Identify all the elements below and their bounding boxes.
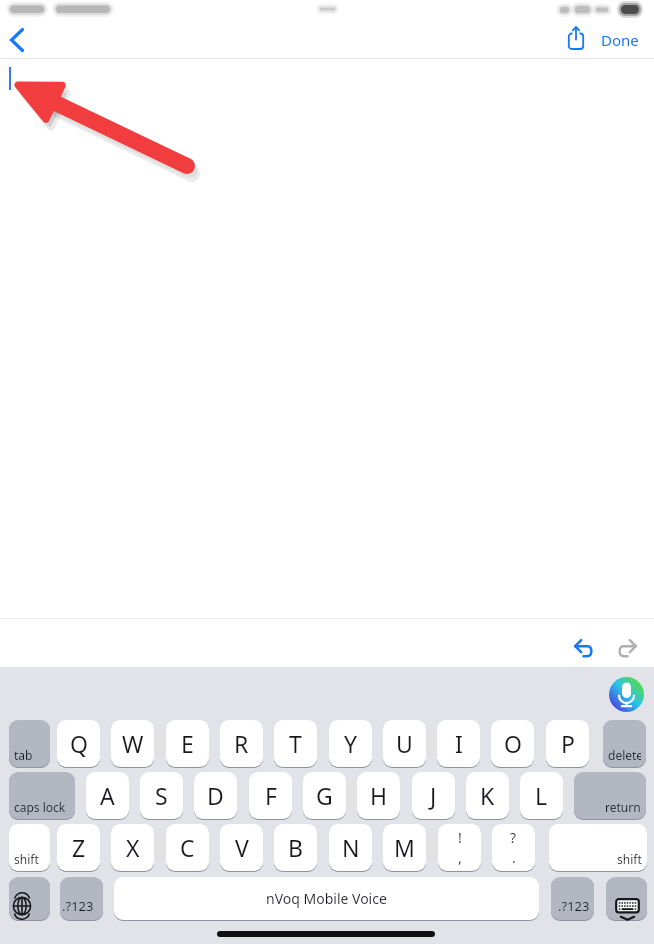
button[interactable] xyxy=(566,26,586,52)
button[interactable]: R xyxy=(220,720,263,767)
staticText: caps lock xyxy=(14,799,66,815)
button[interactable]: F xyxy=(249,772,292,819)
staticText: R xyxy=(234,728,249,759)
button[interactable]: shift xyxy=(9,824,50,871)
button[interactable]: A xyxy=(86,772,129,819)
staticText: N xyxy=(342,832,360,863)
button[interactable]: K xyxy=(466,772,509,819)
button[interactable]: ! xyxy=(438,824,481,871)
button[interactable]: J xyxy=(412,772,455,819)
staticText: I xyxy=(455,728,463,759)
button[interactable] xyxy=(606,877,647,920)
staticText: nVoq Mobile Voice xyxy=(266,889,387,908)
button[interactable]: .?123 xyxy=(60,877,103,920)
button[interactable]: M xyxy=(383,824,426,871)
staticText: T xyxy=(289,728,302,759)
staticText: .?123 xyxy=(558,897,590,915)
staticText: ! xyxy=(458,828,462,847)
button[interactable]: Q xyxy=(57,720,100,767)
staticText: X xyxy=(126,832,140,863)
staticText: D xyxy=(207,780,224,811)
button[interactable]: H xyxy=(357,772,400,819)
staticText: B xyxy=(288,832,303,863)
staticText: U xyxy=(396,728,413,759)
button[interactable]: ? xyxy=(492,824,535,871)
staticText: C xyxy=(180,832,195,863)
staticText: L xyxy=(535,780,548,811)
button[interactable]: E xyxy=(166,720,209,767)
button[interactable]: shift xyxy=(549,824,647,871)
staticText: E xyxy=(181,728,194,759)
button[interactable]: tab xyxy=(9,720,50,767)
staticText: F xyxy=(265,780,277,811)
button[interactable]: T xyxy=(274,720,317,767)
staticText: G xyxy=(316,780,333,811)
staticText: delete xyxy=(608,747,641,763)
staticText: Done xyxy=(601,30,639,50)
button[interactable]: L xyxy=(520,772,563,819)
button[interactable]: U xyxy=(383,720,426,767)
staticText: shift xyxy=(14,851,39,867)
button[interactable]: G xyxy=(303,772,346,819)
staticText: return xyxy=(605,799,641,815)
button[interactable]: Z xyxy=(57,824,100,871)
button[interactable] xyxy=(609,677,644,712)
staticText: .?123 xyxy=(62,897,94,915)
staticText: Q xyxy=(70,728,88,759)
button[interactable] xyxy=(9,877,50,920)
button[interactable]: nVoq Mobile Voice xyxy=(114,877,539,920)
button[interactable]: Y xyxy=(329,720,372,767)
button[interactable]: W xyxy=(111,720,154,767)
button[interactable] xyxy=(573,637,595,659)
button[interactable]: P xyxy=(546,720,589,767)
staticText: W xyxy=(122,728,144,759)
staticText: tab xyxy=(14,747,33,763)
staticText: O xyxy=(504,728,522,759)
button[interactable]: N xyxy=(329,824,372,871)
button[interactable]: S xyxy=(140,772,183,819)
button[interactable]: .?123 xyxy=(551,877,594,920)
staticText: P xyxy=(561,728,575,759)
staticText: Z xyxy=(72,832,86,863)
staticText: J xyxy=(430,780,437,811)
button[interactable] xyxy=(616,637,638,659)
staticText: M xyxy=(394,832,415,863)
staticText: shift xyxy=(617,851,642,867)
staticText: Y xyxy=(344,728,358,759)
button[interactable]: V xyxy=(220,824,263,871)
button[interactable]: return xyxy=(574,772,646,819)
button[interactable]: Done xyxy=(598,29,642,51)
button[interactable]: O xyxy=(491,720,534,767)
staticText: A xyxy=(100,780,115,811)
button[interactable]: D xyxy=(194,772,237,819)
button[interactable]: B xyxy=(274,824,317,871)
button[interactable]: caps lock xyxy=(9,772,75,819)
staticText: . xyxy=(512,848,516,867)
staticText: V xyxy=(235,832,249,863)
staticText: S xyxy=(155,780,168,811)
staticText: ? xyxy=(510,828,517,847)
button[interactable]: X xyxy=(111,824,154,871)
staticText: K xyxy=(480,780,495,811)
button[interactable]: delete xyxy=(603,720,646,767)
button[interactable] xyxy=(6,26,28,54)
button[interactable]: C xyxy=(166,824,209,871)
staticText: H xyxy=(370,780,388,811)
button[interactable]: I xyxy=(437,720,480,767)
staticText: , xyxy=(458,848,462,867)
